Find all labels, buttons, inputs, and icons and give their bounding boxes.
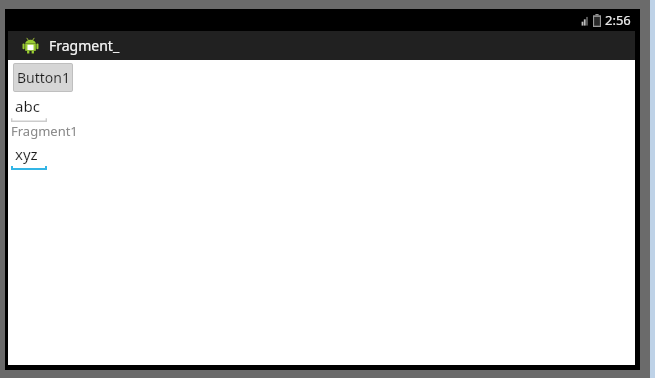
- staticText: Fragment_: [49, 36, 120, 55]
- staticText: abc: [15, 96, 40, 116]
- staticText: xyz: [15, 144, 38, 164]
- button[interactable]: Button1: [13, 63, 73, 92]
- staticText: 2:56: [605, 11, 631, 29]
- staticText: Button1: [17, 68, 70, 87]
- staticText: Fragment1: [11, 122, 78, 140]
